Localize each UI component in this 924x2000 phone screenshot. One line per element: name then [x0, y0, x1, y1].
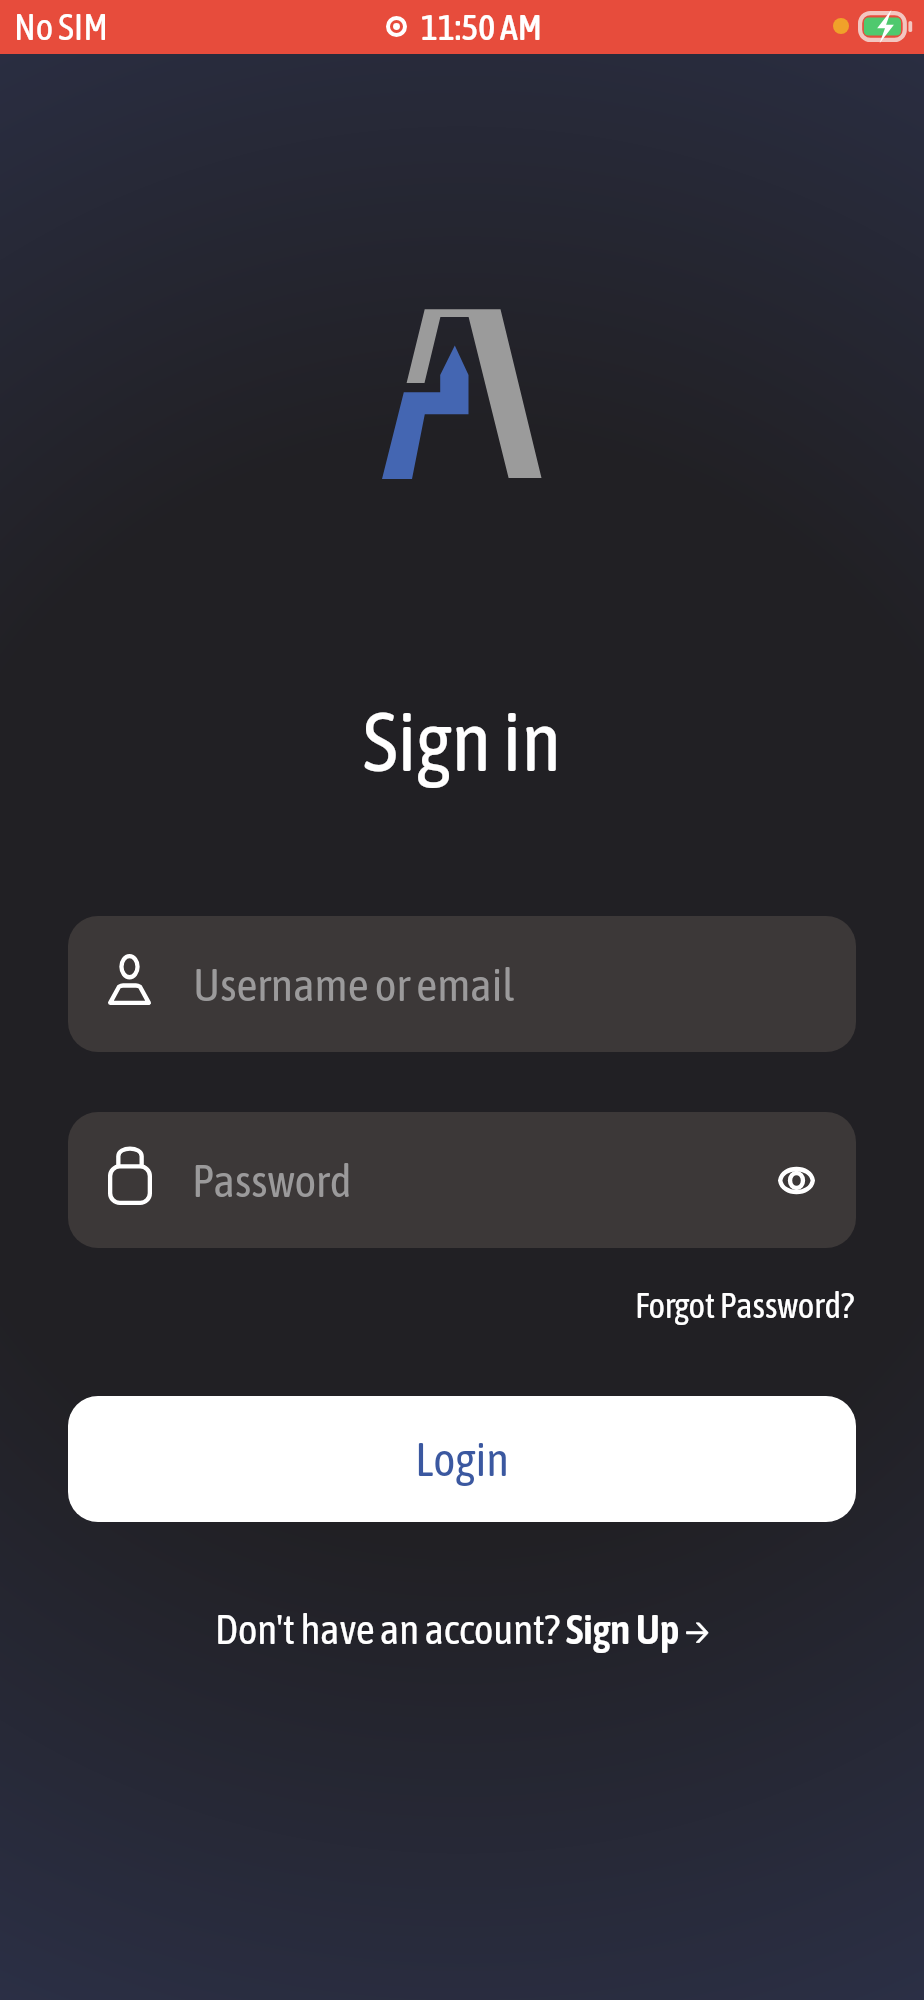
button[interactable]: Password [68, 1112, 856, 1248]
button[interactable]: Login [68, 1396, 856, 1522]
button[interactable]: Sign Up [566, 1606, 710, 1653]
staticText: No SIM [14, 5, 109, 47]
staticText: Don't have an account? [215, 1606, 566, 1653]
button[interactable]: Show password [760, 1144, 832, 1216]
button[interactable]: Username or email [68, 916, 856, 1052]
button[interactable]: Forgot Password? [635, 1277, 854, 1333]
staticText: Username or email [193, 958, 515, 1011]
staticText: Sign Up [566, 1606, 680, 1653]
staticText: Sign in [363, 694, 562, 788]
staticText: 11:50 AM [421, 6, 542, 47]
staticText: → [685, 1608, 710, 1652]
staticText: Login [415, 1432, 510, 1486]
staticText: Password [192, 1154, 352, 1207]
staticText: Forgot Password? [635, 1285, 854, 1325]
